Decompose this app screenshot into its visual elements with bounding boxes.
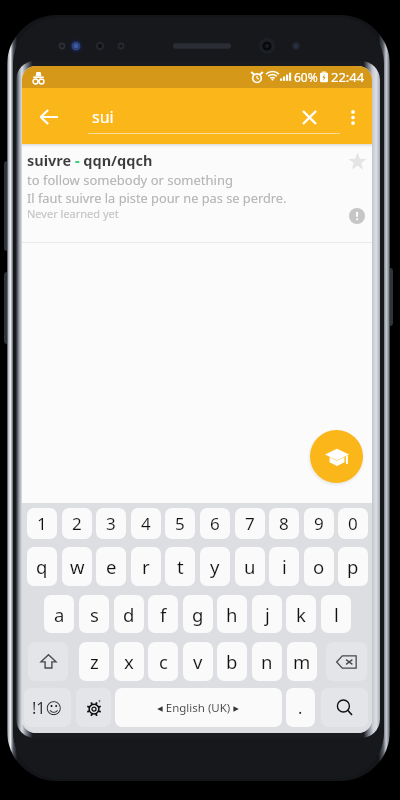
staticText: 2 xyxy=(72,512,82,535)
staticText: . xyxy=(298,697,303,719)
button[interactable]: suivre - qqn/qqch xyxy=(22,144,372,243)
button[interactable]: Back xyxy=(29,97,69,137)
staticText: u xyxy=(244,554,256,579)
staticText: 6 xyxy=(210,512,220,535)
button[interactable]: b xyxy=(217,642,247,681)
button[interactable]: 2 xyxy=(62,508,92,539)
button[interactable]: 8 xyxy=(269,508,299,539)
button[interactable]: Space xyxy=(115,688,282,727)
staticText: 1 xyxy=(37,512,47,535)
button[interactable]: d xyxy=(114,595,144,633)
button[interactable]: w xyxy=(62,547,92,586)
button[interactable]: Full stop xyxy=(286,688,315,727)
button[interactable]: 3 xyxy=(96,508,126,539)
button[interactable]: 5 xyxy=(165,508,195,539)
button[interactable]: z xyxy=(79,642,109,681)
staticText: 4 xyxy=(141,512,151,535)
button[interactable]: e xyxy=(96,547,126,586)
staticText: e xyxy=(106,554,117,579)
staticText: z xyxy=(90,649,99,674)
staticText: q xyxy=(36,554,48,579)
staticText: sui xyxy=(92,106,114,128)
button[interactable]: a xyxy=(44,595,74,633)
button[interactable]: k xyxy=(286,595,316,633)
button[interactable]: 6 xyxy=(200,508,230,539)
staticText: a xyxy=(54,602,65,627)
button[interactable]: r xyxy=(131,547,161,586)
staticText: suivre - qqn/qqch xyxy=(27,150,153,170)
button[interactable]: v xyxy=(183,642,213,681)
staticText: h xyxy=(226,602,238,627)
button[interactable]: o xyxy=(304,547,334,586)
staticText: k xyxy=(296,602,306,627)
staticText: to follow somebody or something xyxy=(27,171,233,189)
staticText: !1☺ xyxy=(32,697,63,719)
button[interactable]: Settings xyxy=(76,688,111,727)
button[interactable]: Search xyxy=(321,688,368,727)
staticText: g xyxy=(192,602,204,627)
button[interactable]: g xyxy=(183,595,213,633)
button[interactable]: x xyxy=(114,642,144,681)
staticText: f xyxy=(160,602,167,627)
button[interactable]: s xyxy=(79,595,109,633)
staticText: p xyxy=(347,554,359,579)
staticText: 3 xyxy=(106,512,116,535)
staticText: ◂ English (UK) ▸ xyxy=(157,700,240,716)
staticText: v xyxy=(193,649,203,674)
button[interactable]: 0 xyxy=(338,508,368,539)
button[interactable]: n xyxy=(252,642,282,681)
staticText: b xyxy=(226,649,238,674)
staticText: t xyxy=(177,554,184,579)
button[interactable]: Symbols xyxy=(24,688,71,727)
button[interactable]: y xyxy=(200,547,230,586)
staticText: 60% xyxy=(294,69,318,85)
staticText: y xyxy=(210,554,220,579)
staticText: i xyxy=(282,554,287,579)
staticText: 8 xyxy=(279,512,289,535)
staticText: 22:44 xyxy=(331,68,365,86)
button[interactable]: Backspace xyxy=(326,642,367,681)
staticText: m xyxy=(293,649,311,674)
staticText: r xyxy=(142,554,150,579)
staticText: 9 xyxy=(314,512,324,535)
staticText: j xyxy=(265,602,270,627)
staticText: 5 xyxy=(175,512,185,535)
staticText: n xyxy=(261,649,273,674)
staticText: Never learned yet xyxy=(27,206,119,221)
staticText: 0 xyxy=(348,512,358,535)
staticText: 7 xyxy=(245,512,255,535)
button[interactable]: t xyxy=(165,547,195,586)
button[interactable]: 7 xyxy=(235,508,265,539)
button[interactable]: u xyxy=(235,547,265,586)
button[interactable]: m xyxy=(287,642,317,681)
staticText: d xyxy=(123,602,135,627)
staticText: o xyxy=(313,554,325,579)
button[interactable]: f xyxy=(148,595,178,633)
button[interactable]: Favourite xyxy=(343,147,372,176)
staticText: Il faut suivre la piste pour ne pas se p… xyxy=(27,189,287,206)
button[interactable]: Practise xyxy=(310,430,363,483)
button[interactable]: c xyxy=(148,642,178,681)
button[interactable]: 1 xyxy=(27,508,57,539)
button[interactable]: q xyxy=(27,547,57,586)
button[interactable]: i xyxy=(269,547,299,586)
button[interactable]: p xyxy=(338,547,368,586)
staticText: s xyxy=(90,602,99,627)
button[interactable]: h xyxy=(217,595,247,633)
button[interactable]: j xyxy=(252,595,282,633)
staticText: c xyxy=(159,649,168,674)
staticText: w xyxy=(70,554,85,579)
staticText: l xyxy=(334,602,339,627)
button[interactable]: Clear search xyxy=(289,97,329,137)
button[interactable]: Shift xyxy=(28,642,68,681)
button[interactable]: More options xyxy=(333,97,372,137)
staticText: x xyxy=(124,649,134,674)
button[interactable]: Info xyxy=(344,203,369,228)
button[interactable]: 4 xyxy=(131,508,161,539)
button[interactable]: 9 xyxy=(304,508,334,539)
button[interactable]: l xyxy=(321,595,351,633)
